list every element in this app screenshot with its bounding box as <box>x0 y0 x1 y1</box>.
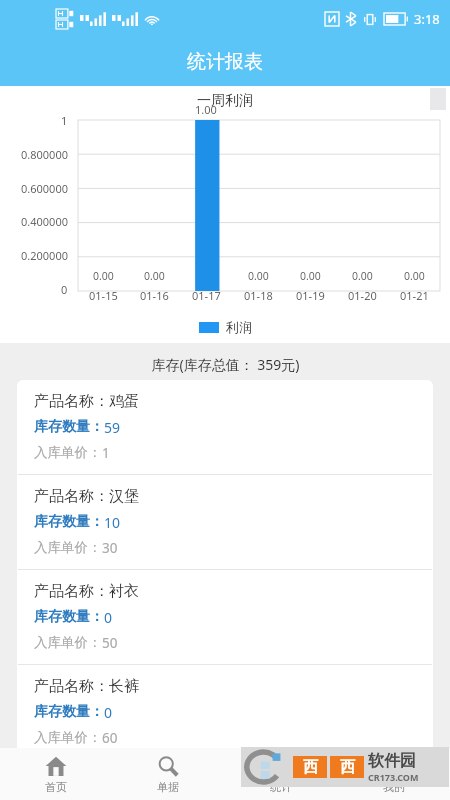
button[interactable]: 产品名称： <box>17 665 433 759</box>
staticText: 西 <box>303 758 318 777</box>
staticText: 0 <box>61 282 68 297</box>
staticText: 01-21 <box>400 288 429 303</box>
staticText: 库存(库存总值： 359元) <box>151 355 300 374</box>
staticText: 0.00 <box>352 269 373 283</box>
staticText: 首页 <box>45 780 67 794</box>
staticText: 库存数量： <box>34 608 104 626</box>
staticText: 产品名称： <box>34 582 109 601</box>
staticText: 0.00 <box>144 269 165 283</box>
staticText: 产品名称： <box>34 677 109 696</box>
staticText: 产品名称： <box>34 392 109 411</box>
staticText: 库存数量： <box>34 418 104 436</box>
staticText: 汉堡 <box>109 487 139 506</box>
staticText: 60 <box>102 729 118 747</box>
staticText: 统计报表 <box>187 50 263 74</box>
staticText: 西 <box>340 758 355 777</box>
staticText: 0.00 <box>248 269 269 283</box>
staticText: 01-19 <box>296 288 325 303</box>
staticText: 统计 <box>270 780 292 794</box>
staticText: 软件园 <box>368 751 416 771</box>
staticText: 0.400000 <box>21 214 68 229</box>
button[interactable]: 我的 <box>337 748 450 800</box>
staticText: 一周利润 <box>197 92 253 110</box>
staticText: 3:18 <box>414 10 440 28</box>
staticText: 0.00 <box>404 269 425 283</box>
staticText: 鸡蛋 <box>109 392 139 411</box>
staticText: 产品名称： <box>34 487 109 506</box>
staticText: 0.200000 <box>21 248 68 263</box>
staticText: 0.800000 <box>21 147 68 162</box>
staticText: CR173.COM <box>368 771 419 783</box>
staticText: 入库单价： <box>34 444 102 461</box>
staticText: 0.600000 <box>21 181 68 196</box>
staticText: 59 <box>104 418 121 437</box>
staticText: 01-18 <box>244 288 273 303</box>
staticText: 长裤 <box>109 677 139 696</box>
staticText: 入库单价： <box>34 634 102 651</box>
staticText: 01-20 <box>348 288 377 303</box>
staticText: 我的 <box>383 780 405 794</box>
staticText: 0.00 <box>93 269 114 283</box>
staticText: 入库单价： <box>34 539 102 556</box>
button[interactable]: 首页 <box>0 748 112 800</box>
staticText: 10 <box>104 513 121 532</box>
staticText: 0.00 <box>300 269 321 283</box>
staticText: 1 <box>102 444 110 462</box>
staticText: 利润 <box>226 319 252 335</box>
button[interactable]: 统计 <box>224 748 337 800</box>
staticText: 入库单价： <box>34 729 102 746</box>
button[interactable]: 产品名称： <box>17 475 433 569</box>
button[interactable]: 产品名称： <box>17 380 433 474</box>
staticText: 01-15 <box>89 288 118 303</box>
button[interactable]: 单据 <box>112 748 224 800</box>
staticText: 0 <box>104 608 113 627</box>
staticText: 单据 <box>157 780 179 794</box>
staticText: 50 <box>102 634 118 652</box>
staticText: 1.00 <box>195 102 217 117</box>
staticText: 库存数量： <box>34 513 104 531</box>
staticText: 01-16 <box>140 288 169 303</box>
staticText: 0 <box>104 703 113 722</box>
staticText: 库存数量： <box>34 703 104 721</box>
staticText: 01-17 <box>192 288 221 303</box>
staticText: 30 <box>102 539 118 557</box>
button[interactable]: 产品名称： <box>17 570 433 664</box>
staticText: 1 <box>61 113 68 128</box>
staticText: 衬衣 <box>109 582 139 601</box>
